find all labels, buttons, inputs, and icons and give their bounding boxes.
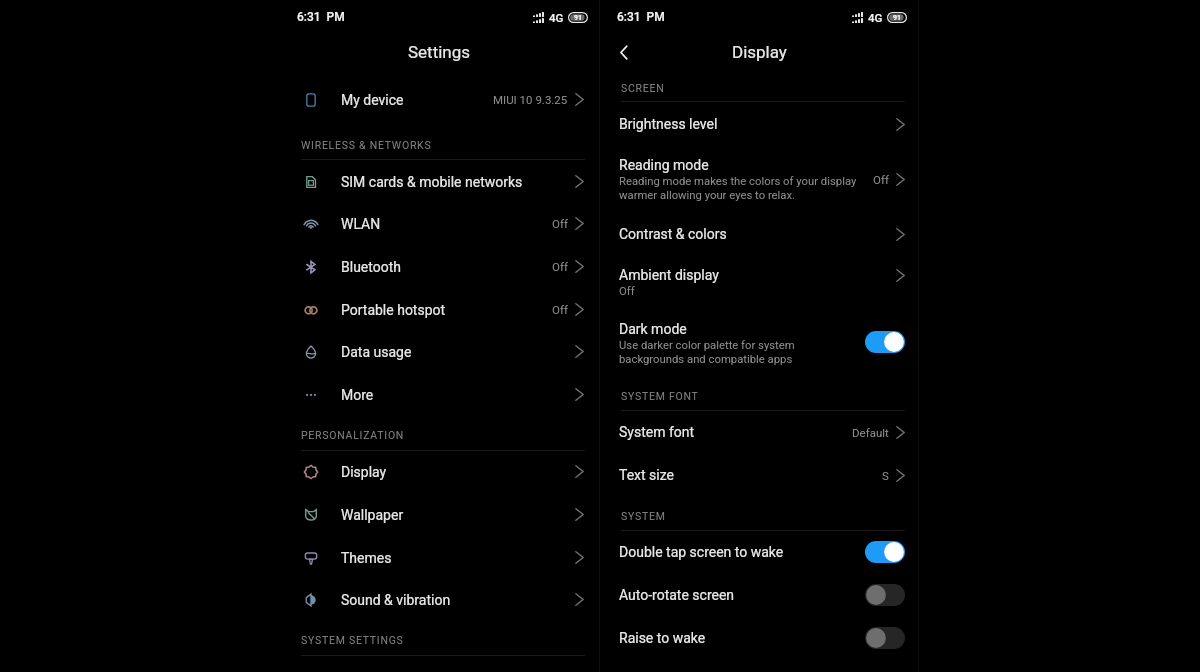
staticText: Off — [552, 260, 568, 273]
button[interactable]: Wallpaper — [280, 493, 599, 536]
staticText: Default — [852, 426, 889, 439]
button[interactable]: Themes — [280, 536, 599, 579]
button[interactable] — [600, 254, 918, 296]
button[interactable]: Back — [612, 40, 636, 64]
staticText: System font — [619, 424, 695, 440]
staticText: Off — [619, 285, 635, 298]
staticText: Portable hotspot — [341, 302, 552, 318]
staticText: Display — [341, 464, 575, 480]
staticText: SYSTEM SETTINGS — [301, 634, 404, 646]
staticText: More — [341, 387, 575, 403]
button[interactable] — [600, 574, 918, 616]
staticText: Auto-rotate screen — [619, 587, 735, 603]
button[interactable] — [600, 411, 918, 453]
button[interactable]: Portable hotspot — [280, 288, 599, 331]
staticText: Reading mode makes the colors of your di… — [619, 175, 857, 201]
button[interactable]: Auto-rotate screen — [865, 584, 905, 606]
staticText: PERSONALIZATION — [301, 429, 405, 441]
button[interactable] — [600, 531, 918, 573]
staticText: Reading mode — [619, 157, 709, 173]
staticText: Text size — [619, 467, 674, 483]
button[interactable]: Bluetooth — [280, 245, 599, 288]
button[interactable] — [600, 103, 918, 145]
staticText: My device — [341, 92, 493, 108]
staticText: Bluetooth — [341, 259, 552, 275]
staticText: S — [882, 469, 889, 482]
button[interactable]: My device — [280, 78, 599, 121]
staticText: Raise to wake — [619, 630, 706, 646]
staticText: Brightness level — [619, 116, 718, 132]
staticText: Wallpaper — [341, 507, 575, 523]
button[interactable]: More — [280, 373, 599, 416]
staticText: 91 — [574, 14, 583, 22]
staticText: SIM cards & mobile networks — [341, 174, 575, 190]
button[interactable] — [600, 144, 918, 186]
staticText: 91 — [893, 14, 902, 22]
button[interactable]: Raise to wake — [865, 627, 905, 649]
button[interactable] — [600, 454, 918, 496]
staticText: WIRELESS & NETWORKS — [301, 139, 432, 151]
button[interactable]: Double tap screen to wake — [865, 541, 905, 563]
button[interactable] — [600, 617, 918, 659]
staticText: Sound & vibration — [341, 592, 575, 608]
staticText: 6:31 PM — [297, 10, 345, 24]
staticText: Double tap screen to wake — [619, 544, 784, 560]
staticText: 6:31 PM — [617, 10, 665, 24]
staticText: Contrast & colors — [619, 226, 727, 242]
staticText: Ambient display — [619, 267, 719, 283]
staticText: MIUI 10 9.3.25 — [493, 93, 568, 106]
button[interactable]: SIM cards & mobile networks — [280, 160, 599, 203]
button[interactable]: Dark mode — [865, 331, 905, 353]
staticText: Settings — [408, 42, 471, 62]
button[interactable]: Display — [280, 450, 599, 493]
button[interactable]: Data usage — [280, 330, 599, 373]
staticText: Use darker color palette for system back… — [619, 339, 795, 365]
staticText: Display — [732, 42, 787, 62]
staticText: Data usage — [341, 344, 575, 360]
button[interactable]: WLAN — [280, 202, 599, 245]
staticText: SYSTEM — [621, 510, 666, 522]
staticText: WLAN — [341, 216, 552, 232]
staticText: SYSTEM FONT — [621, 390, 699, 402]
button[interactable]: Sound & vibration — [280, 578, 599, 621]
staticText: Off — [552, 303, 568, 316]
staticText: Themes — [341, 550, 575, 566]
staticText: Off — [552, 217, 568, 230]
staticText: 4G — [868, 11, 883, 24]
staticText: Dark mode — [619, 321, 687, 337]
staticText: SCREEN — [621, 82, 665, 94]
staticText: 4G — [549, 11, 564, 24]
staticText: Off — [873, 173, 889, 186]
button[interactable] — [600, 213, 918, 255]
button[interactable] — [600, 308, 918, 350]
